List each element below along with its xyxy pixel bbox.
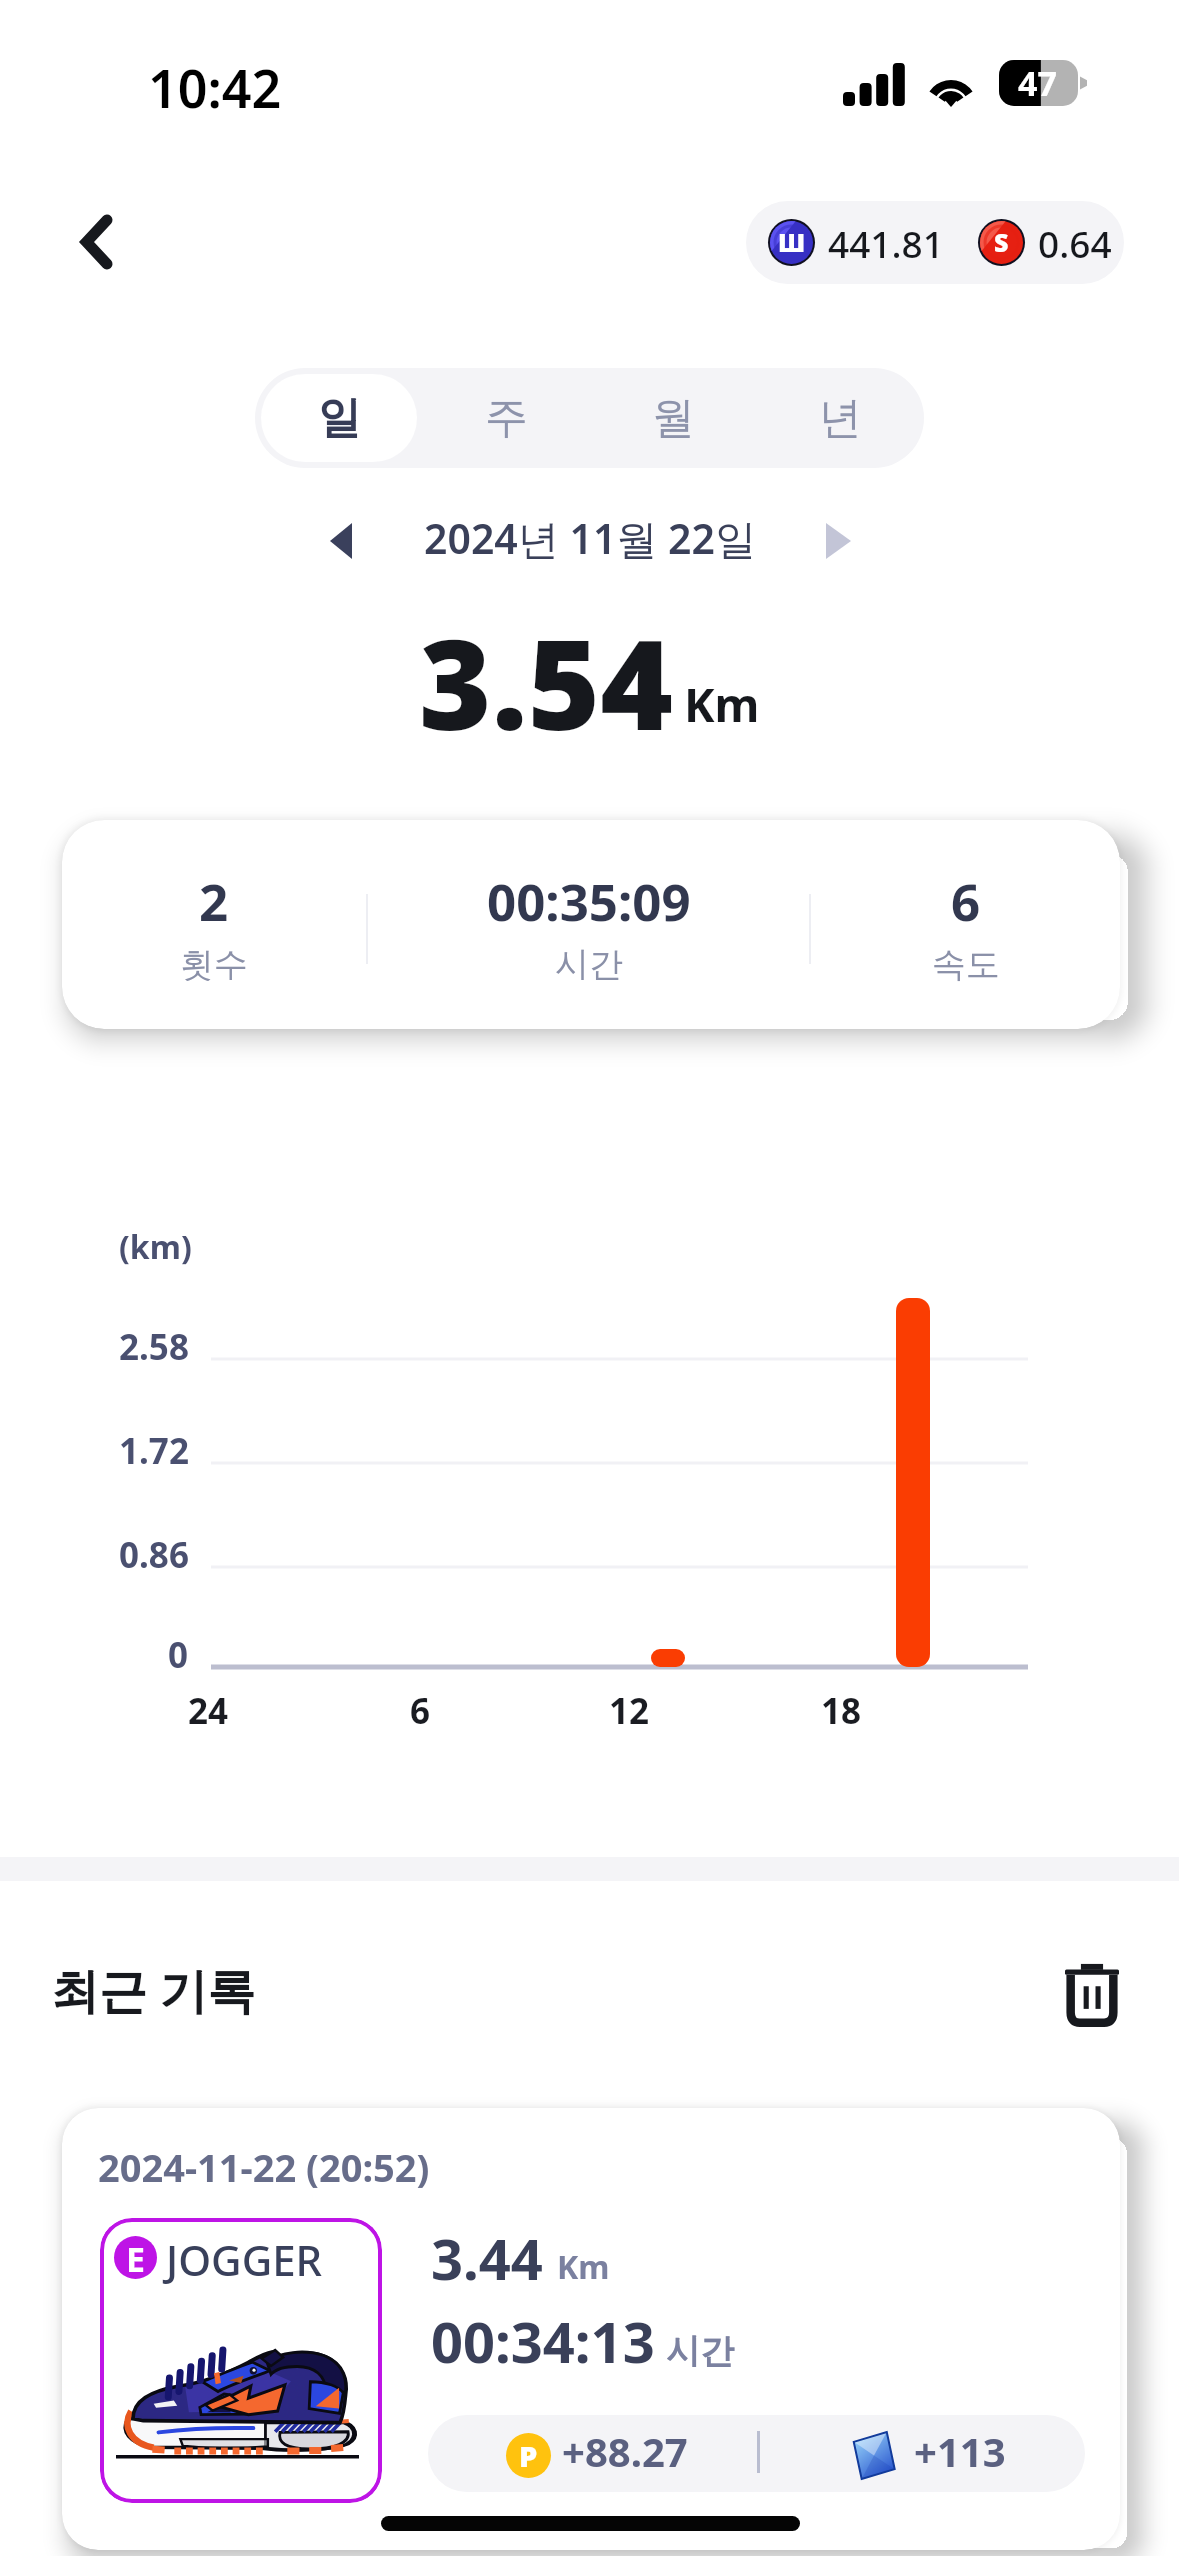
button[interactable]: 월 <box>590 368 757 468</box>
staticText: 2024-11-22 (20:52) <box>98 2141 430 2193</box>
staticText: 2 <box>199 866 229 935</box>
staticText: 횟수 <box>180 943 248 986</box>
staticText: S <box>994 225 1009 259</box>
button[interactable]: 년 <box>757 368 924 468</box>
staticText: 1.72 <box>119 1427 189 1475</box>
button[interactable]: 일 <box>255 368 423 468</box>
staticText: 24 <box>188 1687 229 1735</box>
staticText: (km) <box>119 1225 192 1269</box>
staticText: 3.44 <box>431 2220 543 2296</box>
staticText: 월 <box>652 391 695 445</box>
staticText: 시간 <box>666 2330 734 2373</box>
button[interactable]: JOGGER shoe <box>100 2218 382 2503</box>
button[interactable]: Ш <box>746 201 1124 284</box>
staticText: Ш <box>778 225 806 259</box>
staticText: 0 <box>168 1631 189 1679</box>
button[interactable]: Previous day <box>305 505 377 577</box>
staticText: Km <box>684 673 760 736</box>
staticText: 년 <box>819 391 862 445</box>
staticText: 441.81 <box>828 218 944 268</box>
button[interactable]: P <box>428 2415 1085 2492</box>
button[interactable]: Back <box>54 200 138 284</box>
staticText: 18 <box>821 1687 862 1735</box>
staticText: 최근 기록 <box>51 1957 256 2023</box>
staticText: 6 <box>951 866 981 935</box>
staticText: Km <box>557 2245 610 2289</box>
staticText: 6 <box>410 1687 431 1735</box>
staticText: E <box>126 2236 146 2279</box>
staticText: 00:34:13 <box>431 2303 655 2379</box>
button[interactable]: 2024-11-22 (20:52) <box>62 2108 1120 2550</box>
staticText: +113 <box>914 2424 1006 2478</box>
button[interactable]: Delete records <box>1046 1948 1138 2040</box>
button[interactable]: Next day <box>802 505 874 577</box>
staticText: P <box>519 2436 538 2475</box>
staticText: 주 <box>485 391 528 445</box>
staticText: 3.54 <box>419 597 673 766</box>
staticText: 47 <box>1018 60 1057 106</box>
staticText: 일 <box>318 391 361 445</box>
staticText: 0.86 <box>119 1531 189 1579</box>
staticText: +88.27 <box>562 2424 688 2478</box>
staticText: 2.58 <box>119 1323 189 1371</box>
staticText: 0.64 <box>1038 218 1112 268</box>
staticText: 00:35:09 <box>487 866 691 935</box>
staticText: 10:42 <box>148 52 282 123</box>
staticText: 속도 <box>932 943 1000 986</box>
staticText: 12 <box>609 1687 650 1735</box>
button[interactable]: 주 <box>423 368 590 468</box>
staticText: 2024년 11월 22일 <box>424 510 756 566</box>
staticText: 시간 <box>555 943 623 986</box>
staticText: JOGGER <box>166 2231 323 2288</box>
